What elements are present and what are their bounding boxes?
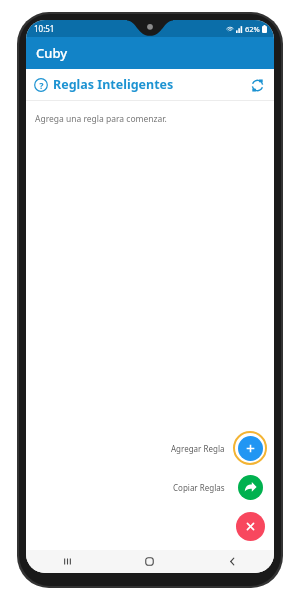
staticText: 10:51 xyxy=(34,23,55,34)
button[interactable]: Inicio xyxy=(108,550,191,573)
staticText: Agregar Regla xyxy=(171,443,225,454)
staticText: Reglas Inteligentes xyxy=(53,76,174,93)
button[interactable]: Recientes xyxy=(26,550,108,573)
staticText: Copiar Reglas xyxy=(173,482,225,493)
button[interactable]: Ayuda xyxy=(34,78,48,92)
button[interactable]: Cerrar xyxy=(233,509,267,543)
button[interactable]: Agregar Regla xyxy=(166,431,267,465)
button[interactable]: Actualizar xyxy=(248,76,266,94)
button[interactable]: Copiar Reglas xyxy=(168,470,267,504)
button[interactable]: Atrás xyxy=(191,550,274,573)
staticText: ? xyxy=(39,79,44,91)
staticText: Agrega una regla para comenzar. xyxy=(35,113,167,125)
staticText: 62% xyxy=(245,24,260,34)
staticText: Cuby xyxy=(36,44,68,62)
